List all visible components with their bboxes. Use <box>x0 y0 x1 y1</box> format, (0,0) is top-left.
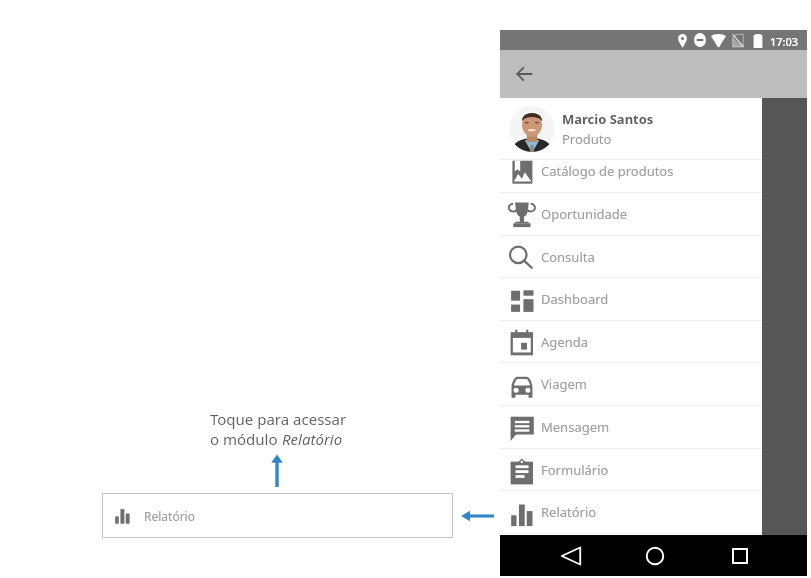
staticText: Oportunidade <box>541 205 628 223</box>
staticText: Catálogo de produtos <box>541 162 674 180</box>
button[interactable]: Agenda <box>500 320 762 363</box>
button[interactable]: Home <box>641 542 669 570</box>
staticText: Produto <box>562 130 612 148</box>
button[interactable]: Back <box>557 542 585 570</box>
button[interactable]: Mensagem <box>500 405 762 448</box>
button[interactable]: Marcio Santos <box>500 98 762 159</box>
staticText: o módulo <box>210 429 282 449</box>
staticText: Consulta <box>541 248 595 266</box>
staticText: Relatório <box>282 429 343 449</box>
button[interactable]: Viagem <box>500 362 762 405</box>
button[interactable]: Dashboard <box>500 277 762 320</box>
staticText: Formulário <box>541 461 609 479</box>
staticText: 17:03 <box>770 34 799 49</box>
staticText: Mensagem <box>541 418 610 436</box>
button[interactable]: Formulário <box>500 448 762 491</box>
staticText: Relatório <box>541 503 597 521</box>
staticText: Relatório <box>144 508 195 524</box>
button[interactable]: Back <box>508 58 540 90</box>
staticText: Viagem <box>541 375 587 393</box>
staticText: Dashboard <box>541 290 609 308</box>
staticText: Agenda <box>541 333 588 351</box>
button[interactable]: Relatório <box>500 490 762 533</box>
staticText: Marcio Santos <box>562 110 654 128</box>
button[interactable]: Recent apps <box>726 542 754 570</box>
button[interactable]: Back <box>500 50 807 98</box>
button[interactable]: Catálogo de produtos <box>500 159 762 192</box>
button[interactable]: Consulta <box>500 235 762 278</box>
button[interactable]: Relatório <box>102 493 453 538</box>
button[interactable]: Oportunidade <box>500 192 762 235</box>
staticText: Toque para acessar <box>210 409 347 429</box>
